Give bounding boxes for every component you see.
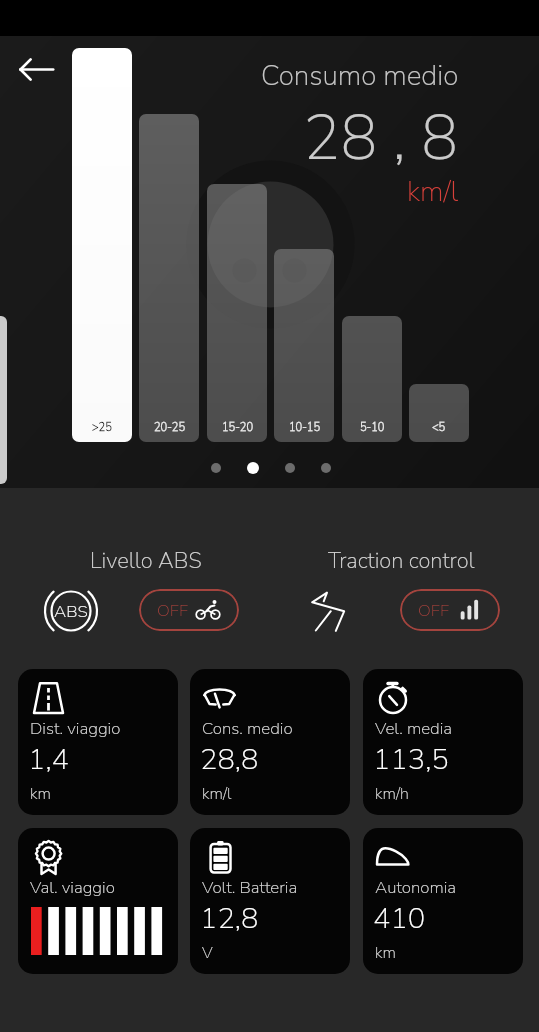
button[interactable]: 10-15	[274, 249, 334, 442]
staticText: Dist. viaggio	[30, 717, 121, 740]
button[interactable]	[321, 463, 331, 473]
button[interactable]: Autonomia	[363, 828, 523, 974]
staticText: Cons. medio	[202, 717, 293, 740]
staticText: km/h	[375, 783, 409, 805]
button[interactable]: Dist. viaggio	[18, 669, 178, 815]
staticText: 28,8	[200, 740, 259, 780]
button[interactable]: 5-10	[342, 316, 402, 442]
staticText: Livello ABS	[90, 546, 202, 576]
staticText: 12,8	[200, 899, 259, 939]
staticText: Vel. media	[375, 717, 453, 740]
staticText: 10-15	[289, 420, 320, 435]
button[interactable]: OFF	[139, 589, 239, 631]
staticText: 113,5	[373, 740, 449, 780]
button[interactable]: ABS level	[42, 582, 100, 640]
staticText: 28 , 8	[303, 96, 459, 181]
button[interactable]: Val. viaggio	[18, 828, 178, 974]
staticText: 20-25	[154, 420, 185, 435]
staticText: 410	[373, 899, 426, 939]
button[interactable]	[211, 463, 221, 473]
staticText: 1,4	[28, 740, 69, 780]
staticText: OFF	[418, 599, 449, 622]
button[interactable]	[285, 463, 295, 473]
staticText: Val. viaggio	[30, 876, 115, 899]
staticText: km/l	[202, 783, 232, 805]
button[interactable]: Back	[13, 46, 60, 93]
button[interactable]: Traction control	[301, 582, 358, 639]
staticText: OFF	[157, 599, 188, 622]
staticText: 15-20	[222, 420, 253, 435]
staticText: V	[202, 942, 213, 964]
staticText: Consumo medio	[261, 57, 459, 95]
button[interactable]: Volt. Batteria	[190, 828, 350, 974]
staticText: km/l	[407, 173, 459, 211]
button[interactable]: 15-20	[207, 184, 267, 442]
staticText: km	[375, 942, 396, 964]
staticText: <5	[432, 420, 446, 435]
button[interactable]	[247, 462, 259, 474]
staticText: >25	[92, 420, 112, 435]
staticText: Traction control	[328, 546, 475, 576]
staticText: 5-10	[360, 420, 385, 435]
staticText: km	[30, 783, 51, 805]
button[interactable]: Cons. medio	[190, 669, 350, 815]
button[interactable]: >25	[72, 48, 132, 442]
staticText: Volt. Batteria	[202, 876, 298, 899]
button[interactable]: <5	[409, 384, 469, 442]
button[interactable]: OFF	[400, 589, 500, 631]
staticText: Autonomia	[375, 876, 457, 899]
button[interactable]: Vel. media	[363, 669, 523, 815]
button[interactable]: 20-25	[139, 114, 199, 442]
staticText: ABS	[54, 600, 88, 623]
